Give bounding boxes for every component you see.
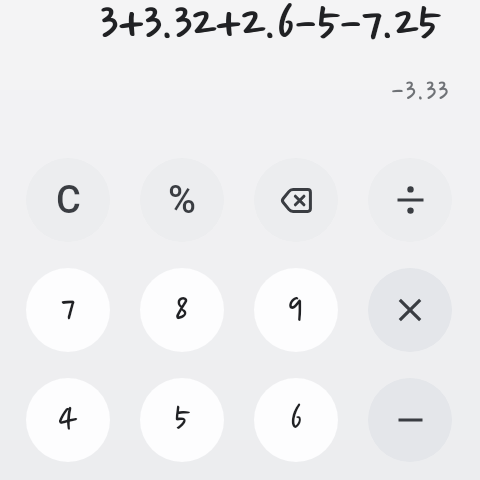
staticText: 4 (58, 399, 78, 441)
button[interactable]: 6 (254, 378, 338, 462)
button[interactable]: 9 (254, 268, 338, 352)
button[interactable]: C (26, 158, 110, 242)
staticText: -3.33 (391, 75, 450, 110)
button[interactable]: % (140, 158, 224, 242)
staticText: 8 (175, 289, 189, 331)
staticText: 9 (288, 289, 304, 331)
staticText: 7 (61, 289, 76, 331)
button[interactable] (254, 158, 338, 242)
staticText: C (56, 178, 81, 223)
staticText: % (168, 178, 196, 223)
button[interactable] (368, 268, 452, 352)
staticText: 3+3.32+2.6-5-7.25 (101, 0, 442, 56)
staticText: 5 (174, 399, 191, 441)
button[interactable]: 8 (140, 268, 224, 352)
button[interactable] (368, 158, 452, 242)
button[interactable] (368, 378, 452, 462)
button[interactable]: 7 (26, 268, 110, 352)
button[interactable]: 5 (140, 378, 224, 462)
staticText: 6 (290, 399, 303, 441)
staticText: 3+3.32+2.6-5-7.25 (100, 0, 441, 56)
button[interactable]: 4 (26, 378, 110, 462)
